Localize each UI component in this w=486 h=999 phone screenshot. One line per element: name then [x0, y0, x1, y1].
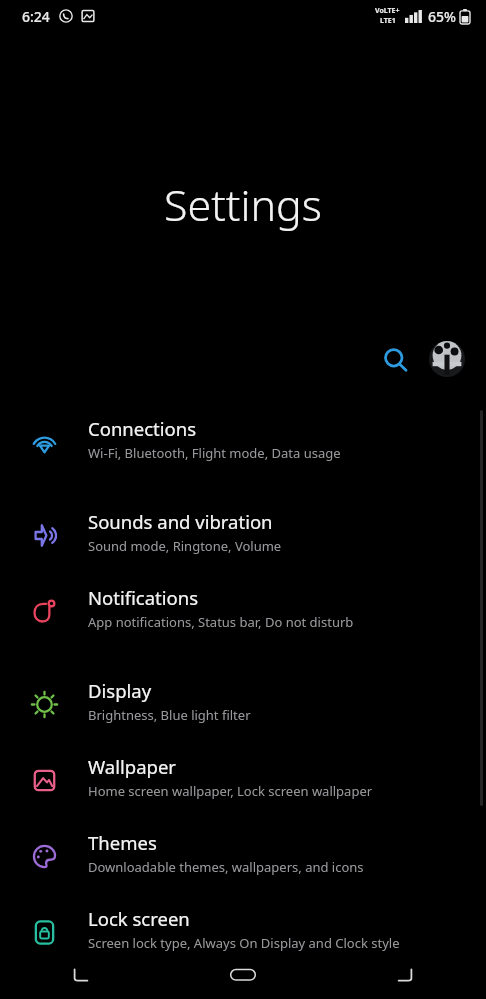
staticText: Settings: [164, 175, 322, 234]
button[interactable]: Home: [162, 951, 324, 999]
button[interactable]: Display: [0, 678, 486, 732]
staticText: Screen lock type, Always On Display and …: [88, 934, 400, 952]
staticText: 6:24: [22, 7, 50, 26]
staticText: Display: [88, 678, 152, 703]
button[interactable]: Notifications: [0, 585, 486, 639]
staticText: Wi-Fi, Bluetooth, Flight mode, Data usag…: [88, 444, 341, 462]
button[interactable]: Wallpaper: [0, 754, 486, 808]
staticText: LTE1: [380, 16, 396, 26]
staticText: Sound mode, Ringtone, Volume: [88, 537, 282, 555]
button[interactable]: Sounds and vibration: [0, 509, 486, 563]
button[interactable]: Connections: [0, 416, 486, 470]
staticText: App notifications, Status bar, Do not di…: [88, 613, 354, 631]
button[interactable]: Back: [324, 951, 486, 999]
staticText: Lock screen: [88, 906, 190, 931]
staticText: Downloadable themes, wallpapers, and ico…: [88, 858, 364, 876]
button[interactable]: Lock screen: [0, 906, 486, 960]
staticText: Home screen wallpaper, Lock screen wallp…: [88, 782, 373, 800]
staticText: Notifications: [88, 585, 199, 610]
staticText: Wallpaper: [88, 754, 176, 779]
button[interactable]: Recent apps: [0, 951, 162, 999]
staticText: Themes: [88, 830, 157, 855]
button[interactable]: Samsung account profile: [424, 336, 470, 382]
staticText: VoLTE+: [375, 6, 400, 16]
button[interactable]: Themes: [0, 830, 486, 884]
staticText: Brightness, Blue light filter: [88, 706, 251, 724]
button[interactable]: Search settings: [372, 336, 418, 382]
staticText: 65%: [428, 7, 456, 26]
staticText: Connections: [88, 416, 197, 441]
staticText: Sounds and vibration: [88, 509, 273, 534]
